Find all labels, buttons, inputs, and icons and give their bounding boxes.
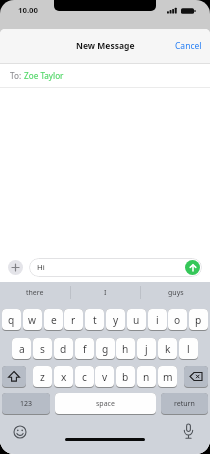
button[interactable]: p: [189, 309, 208, 331]
staticText: Cancel: [175, 40, 202, 52]
button[interactable]: t: [85, 309, 104, 331]
staticText: space: [96, 399, 115, 409]
button[interactable]: c: [75, 366, 94, 388]
button[interactable]: n: [137, 366, 156, 388]
button[interactable]: [184, 366, 208, 388]
button[interactable]: return: [161, 393, 208, 415]
staticText: I: [104, 288, 107, 298]
staticText: b: [122, 370, 129, 384]
staticText: c: [82, 370, 87, 384]
staticText: s: [40, 342, 45, 356]
button[interactable]: o: [168, 309, 187, 331]
staticText: f: [83, 342, 87, 356]
button[interactable]: s: [33, 338, 52, 360]
button[interactable]: z: [33, 366, 52, 388]
staticText: l: [187, 342, 190, 356]
staticText: Hi: [37, 262, 45, 273]
button[interactable]: d: [54, 338, 73, 360]
staticText: 10.00: [18, 5, 39, 16]
button[interactable]: there: [0, 282, 70, 303]
staticText: e: [51, 313, 57, 327]
staticText: guys: [168, 288, 184, 298]
staticText: a: [19, 342, 25, 356]
button[interactable]: l: [179, 338, 198, 360]
button[interactable]: a: [12, 338, 31, 360]
staticText: u: [133, 313, 140, 327]
staticText: r: [71, 313, 76, 327]
button[interactable]: r: [64, 309, 83, 331]
staticText: d: [60, 342, 67, 356]
staticText: v: [102, 370, 108, 384]
staticText: New Message: [76, 40, 135, 52]
staticText: m: [163, 370, 173, 384]
button[interactable]: u: [127, 309, 146, 331]
button[interactable]: i: [148, 309, 167, 331]
staticText: there: [26, 288, 44, 298]
staticText: n: [143, 370, 150, 384]
staticText: x: [61, 370, 67, 384]
button[interactable]: j: [137, 338, 156, 360]
staticText: j: [145, 342, 148, 356]
button[interactable]: guys: [141, 282, 210, 303]
button[interactable]: space: [55, 393, 156, 415]
button[interactable]: g: [96, 338, 115, 360]
button[interactable]: b: [116, 366, 135, 388]
staticText: p: [195, 313, 202, 327]
button[interactable]: [8, 260, 23, 275]
staticText: k: [165, 342, 171, 356]
button[interactable]: Cancel: [175, 40, 210, 52]
button[interactable]: [2, 366, 26, 388]
staticText: h: [122, 342, 129, 356]
staticText: 123: [20, 399, 33, 409]
staticText: q: [8, 313, 15, 327]
button[interactable]: m: [158, 366, 177, 388]
button[interactable]: [185, 260, 200, 275]
staticText: z: [40, 370, 45, 384]
button[interactable]: q: [2, 309, 21, 331]
button[interactable]: To:: [0, 64, 210, 87]
button[interactable]: 123: [2, 393, 50, 415]
button[interactable]: e: [44, 309, 63, 331]
button[interactable]: h: [116, 338, 135, 360]
staticText: To:: [10, 70, 24, 81]
staticText: Zoe Taylor: [24, 70, 64, 81]
staticText: i: [156, 313, 159, 327]
staticText: o: [174, 313, 181, 327]
button[interactable]: I: [71, 282, 140, 303]
button[interactable]: v: [95, 366, 114, 388]
staticText: y: [113, 313, 119, 327]
staticText: t: [93, 313, 97, 327]
staticText: return: [174, 399, 195, 409]
button[interactable]: f: [75, 338, 94, 360]
button[interactable]: w: [23, 309, 42, 331]
staticText: g: [102, 342, 109, 356]
button[interactable]: x: [54, 366, 73, 388]
staticText: w: [28, 313, 37, 327]
button[interactable]: k: [158, 338, 177, 360]
button[interactable]: y: [106, 309, 125, 331]
